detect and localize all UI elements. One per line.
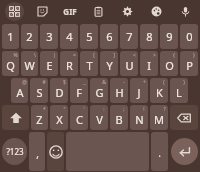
staticText: ] [113,52,115,59]
staticText: ?123 [6,146,24,157]
button[interactable]: 3 [40,24,58,49]
button[interactable]: & [90,78,108,103]
button[interactable]: ?123 [2,138,27,165]
staticText: W [24,58,35,73]
staticText: + [143,79,146,86]
button[interactable]: " [50,105,68,130]
staticText: ' [83,106,85,113]
staticText: ( [163,79,165,86]
button[interactable]: Apps [0,0,28,22]
staticText: ! [143,106,145,113]
staticText: 4 [66,29,73,44]
staticText: < [133,52,136,59]
button[interactable]: , [29,132,45,171]
button[interactable]: 4 [60,24,78,49]
button[interactable]: 5 [80,24,98,49]
staticText: Q [6,58,15,73]
button[interactable]: % [2,51,19,76]
button[interactable]: Backspace [170,105,198,130]
button[interactable]: 1 [2,24,19,49]
staticText: ) [183,79,185,86]
staticText: | [53,52,56,59]
button[interactable]: Voice input [171,0,200,22]
staticText: K [156,85,163,100]
staticText: * [43,106,46,113]
staticText: . [158,146,161,160]
button[interactable]: . [151,132,168,171]
staticText: 9 [166,29,173,44]
button[interactable]: @ [11,78,28,103]
staticText: _ [83,79,86,86]
staticText: $ [63,79,66,86]
staticText: S [36,85,43,100]
staticText: 5 [86,29,93,44]
staticText: T [86,58,93,73]
button[interactable]: 2 [21,24,38,49]
button[interactable]: _ [70,78,88,103]
button[interactable]: > [140,51,158,76]
button[interactable]: # [30,78,48,103]
button[interactable]: 0 [180,24,198,49]
staticText: G [95,85,104,100]
button[interactable]: 7 [120,24,138,49]
button[interactable]: * [31,105,48,130]
staticText: GIF [63,6,77,17]
button[interactable]: ! [130,105,148,130]
staticText: O [165,58,174,73]
staticText: 1 [7,29,14,44]
button[interactable]: ? [150,105,168,130]
button[interactable]: Settings [113,0,142,22]
staticText: N [135,112,144,127]
staticText: V [96,112,103,127]
button[interactable]: 6 [100,24,118,49]
staticText: D [55,85,64,100]
staticText: { [173,52,175,59]
staticText: J [137,85,141,100]
staticText: \ [34,52,36,59]
staticText: H [115,85,124,100]
button[interactable]: ) [170,78,188,103]
button[interactable]: | [40,51,58,76]
staticText: " [63,106,66,113]
staticText: L [176,85,182,100]
staticText: C [76,112,83,127]
staticText: 2 [26,29,33,44]
button[interactable]: - [110,78,128,103]
button[interactable]: = [60,51,78,76]
staticText: ; [123,106,125,113]
button[interactable]: Shift [2,105,29,130]
button[interactable]: $ [50,78,68,103]
button[interactable]: Themes [142,0,171,22]
staticText: I [147,58,151,73]
button[interactable]: { [160,51,178,76]
button[interactable]: } [180,51,198,76]
button[interactable]: 9 [160,24,178,49]
button[interactable]: GIF [56,0,84,22]
staticText: Z [36,112,43,127]
staticText: B [115,112,123,127]
staticText: } [193,52,195,59]
staticText: 3 [46,29,53,44]
staticText: A [16,85,24,100]
staticText: X [56,112,63,127]
button[interactable]: : [90,105,108,130]
button[interactable]: + [130,78,148,103]
staticText: 6 [106,29,113,44]
staticText: : [103,106,105,113]
button[interactable]: Clipboard [84,0,113,22]
staticText: % [13,52,18,59]
button[interactable]: ' [70,105,88,130]
staticText: = [73,52,76,59]
button[interactable]: 8 [140,24,158,49]
button[interactable]: < [120,51,138,76]
button[interactable]: Emoji [47,132,64,171]
staticText: 8 [146,29,153,44]
button[interactable]: ( [150,78,168,103]
button[interactable]: Stickers [28,0,56,22]
button[interactable]: Enter [171,138,198,165]
button[interactable]: ; [110,105,128,130]
button[interactable]: [ [80,51,98,76]
button[interactable]: ] [100,51,118,76]
button[interactable]: \ [21,51,38,76]
